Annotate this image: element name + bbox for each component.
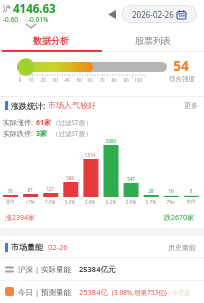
staticText: 25384亿	[79, 287, 108, 297]
staticText: 90	[119, 77, 133, 83]
staticText: 涨停	[0, 199, 20, 205]
staticText: 4146.63	[13, 1, 56, 17]
button[interactable]: 数据分析	[0, 28, 102, 52]
staticText: 10	[161, 188, 181, 194]
staticText: 7-5%	[40, 199, 60, 205]
staticText: 5-2%	[60, 199, 80, 205]
staticText: 更多	[184, 101, 198, 110]
button[interactable]	[0, 98, 204, 113]
staticText: 25384亿元	[79, 264, 116, 274]
staticText: 3家	[36, 129, 48, 139]
staticText: 0	[13, 77, 27, 83]
staticText: 78	[0, 188, 20, 194]
staticText: 60	[83, 77, 97, 83]
staticText: 跌2670家	[164, 213, 195, 223]
staticText: -0.60	[3, 15, 18, 24]
staticText: （过滤ST股）	[52, 129, 92, 138]
staticText: 588	[60, 175, 80, 181]
staticText: 综合强度	[167, 75, 197, 83]
staticText: 市场量能	[11, 242, 43, 252]
staticText: 40	[60, 77, 74, 83]
button[interactable]	[0, 258, 204, 280]
staticText: 30	[48, 77, 62, 83]
staticText: 5-7%	[141, 199, 161, 205]
staticText: 7%<	[161, 199, 181, 205]
staticText: 数据分析	[33, 35, 69, 46]
staticText: 实际跌停:	[3, 129, 33, 139]
staticText: 2-5%	[121, 199, 141, 205]
staticText: 70	[95, 77, 109, 83]
staticText: 28	[141, 188, 161, 194]
staticText: (3.08%,增量753亿)	[112, 288, 167, 297]
staticText: 10	[24, 77, 38, 83]
button[interactable]: 2026-02-26	[121, 5, 197, 23]
staticText: 2080	[101, 138, 121, 144]
button[interactable]: 股票列表	[102, 28, 204, 52]
staticText: 2026-02-26	[132, 9, 174, 20]
staticText: （过滤ST股）	[52, 118, 92, 127]
staticText: 0-2%	[101, 199, 121, 205]
staticText: 跌停	[181, 199, 201, 205]
staticText: 沪	[3, 3, 11, 13]
staticText: 61家	[36, 118, 52, 128]
staticText: 87	[20, 187, 40, 193]
staticText: 54	[168, 57, 194, 75]
button[interactable]	[0, 281, 204, 303]
button[interactable]	[0, 0, 204, 28]
staticText: -0.01%	[28, 15, 49, 24]
button[interactable]	[108, 10, 116, 19]
staticText: 127	[40, 186, 60, 192]
staticText: 100	[131, 77, 145, 83]
staticText: 电小专营股	[160, 289, 190, 297]
staticText: 市场人气较好	[48, 100, 96, 110]
staticText: 涨跌统计:	[11, 100, 46, 111]
staticText: 2-0%	[80, 199, 100, 205]
staticText: 80	[107, 77, 121, 83]
staticText: 涨2394家	[5, 213, 36, 223]
staticText: 1514	[80, 152, 100, 158]
staticText: 历史量能	[168, 243, 196, 252]
button[interactable]	[0, 238, 204, 256]
staticText: 实际涨停:	[3, 118, 33, 128]
staticText: 5	[181, 188, 201, 194]
staticText: 547	[121, 176, 141, 182]
staticText: 50	[72, 77, 86, 83]
staticText: 股票列表	[135, 35, 171, 46]
staticText: 沪深 | 实际量能	[18, 264, 72, 274]
staticText: 今日 | 预测量能	[18, 287, 72, 297]
staticText: >7%	[20, 199, 40, 205]
staticText: 02-26	[48, 242, 68, 252]
staticText: 20	[36, 77, 50, 83]
